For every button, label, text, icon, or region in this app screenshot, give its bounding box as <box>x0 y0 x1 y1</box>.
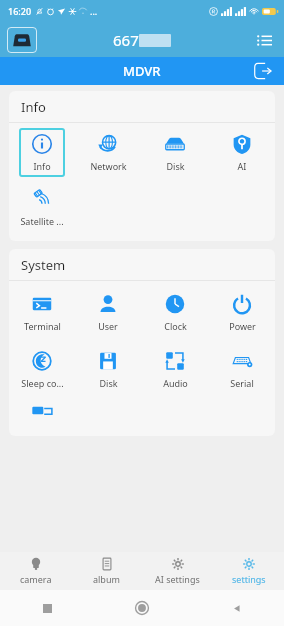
staticText: Disk <box>99 377 118 389</box>
button[interactable]: Serial <box>219 345 265 394</box>
staticText: Power <box>229 320 256 332</box>
staticText: 16:20 <box>8 5 32 17</box>
staticText: camera <box>20 573 52 585</box>
staticText: AI Author... <box>219 160 265 172</box>
button[interactable]: Back <box>189 590 284 626</box>
button[interactable]: Terminal <box>19 288 65 337</box>
button[interactable]: Clock <box>152 288 198 337</box>
button[interactable]: Network <box>85 128 131 177</box>
staticText: settings <box>232 573 266 585</box>
staticText: System <box>21 256 66 274</box>
staticText: Terminal <box>24 320 61 332</box>
staticText: ... <box>90 5 98 17</box>
staticText: Serial <box>230 377 254 389</box>
staticText: MDVR <box>123 62 161 80</box>
staticText: AI settings <box>155 573 200 585</box>
button[interactable]: Disk <box>152 128 198 177</box>
button[interactable]: settings <box>213 552 284 590</box>
button[interactable]: Disk <box>85 345 131 394</box>
button[interactable]: Menu <box>254 30 274 50</box>
button[interactable]: Info <box>19 128 65 177</box>
button[interactable]: Logout <box>252 60 274 82</box>
button[interactable]: Sleep co... <box>19 345 65 394</box>
button[interactable]: AI settings <box>142 552 213 590</box>
staticText: Disk <box>166 160 185 172</box>
staticText: Sleep co... <box>21 377 64 389</box>
staticText: album <box>93 573 120 585</box>
button[interactable]: Power <box>219 288 265 337</box>
button[interactable]: Satellite ... <box>19 183 65 232</box>
button[interactable]: Device <box>7 27 37 53</box>
button[interactable]: AI Author... <box>219 128 265 177</box>
button[interactable]: Audio <box>152 345 198 394</box>
staticText: Info <box>33 160 51 172</box>
staticText: Audio <box>163 377 188 389</box>
button[interactable]: camera <box>0 552 71 590</box>
staticText: 667 <box>113 30 139 50</box>
staticText: Satellite ... <box>20 215 64 227</box>
button[interactable]: User <box>85 288 131 337</box>
staticText: Clock <box>164 320 187 332</box>
button[interactable]: Recents <box>0 590 94 626</box>
staticText: Network <box>90 160 127 172</box>
staticText: Info <box>21 98 46 116</box>
button[interactable]: Home <box>94 590 189 626</box>
staticText: User <box>98 320 118 332</box>
button[interactable]: album <box>71 552 142 590</box>
